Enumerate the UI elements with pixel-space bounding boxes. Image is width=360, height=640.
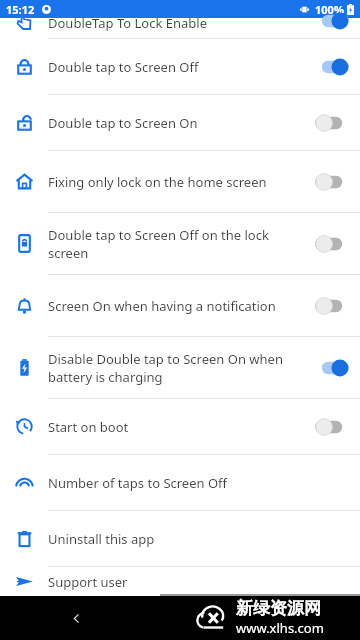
- staticText: Double tap to Screen Off on the lock scr…: [48, 226, 296, 262]
- staticText: Start on boot: [48, 418, 129, 436]
- staticText: Fixing only lock on the home screen: [48, 173, 267, 191]
- staticText: Number of taps to Screen Off: [48, 474, 228, 492]
- staticText: Double tap to Screen On: [48, 114, 198, 132]
- staticText: www.xlhs.com: [236, 619, 324, 637]
- button[interactable]: DoubleTap To Lock Enable: [0, 18, 360, 38]
- button[interactable]: Uninstall this app: [0, 511, 360, 566]
- button[interactable]: Screen On when having a notification: [0, 275, 360, 336]
- staticText: 15:12: [6, 2, 35, 17]
- button[interactable]: Start on boot: [0, 399, 360, 454]
- staticText: Uninstall this app: [48, 530, 155, 548]
- staticText: 100%: [315, 2, 344, 17]
- button[interactable]: Double tap to Screen On: [0, 95, 360, 150]
- button[interactable]: Double tap to Screen Off: [0, 39, 360, 94]
- button[interactable]: Support user: [0, 567, 360, 596]
- button[interactable]: Back: [60, 602, 92, 634]
- staticText: DoubleTap To Lock Enable: [48, 14, 207, 32]
- staticText: Support user: [48, 573, 128, 591]
- button[interactable]: Disable Double tap to Screen On when bat…: [0, 337, 360, 398]
- staticText: Screen On when having a notification: [48, 297, 276, 315]
- staticText: Double tap to Screen Off: [48, 58, 199, 76]
- button[interactable]: Fixing only lock on the home screen: [0, 151, 360, 212]
- staticText: 新绿资源网: [236, 598, 321, 619]
- staticText: Disable Double tap to Screen On when bat…: [48, 350, 296, 386]
- button[interactable]: Number of taps to Screen Off: [0, 455, 360, 510]
- button[interactable]: Double tap to Screen Off on the lock scr…: [0, 213, 360, 274]
